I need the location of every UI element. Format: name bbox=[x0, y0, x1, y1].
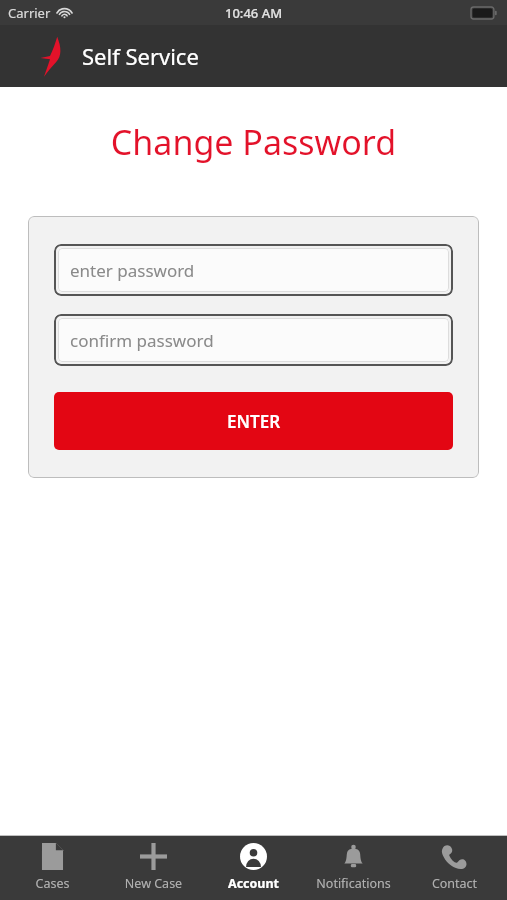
other: New Case bbox=[140, 843, 167, 870]
button[interactable]: enter password bbox=[58, 248, 449, 292]
other: Cases bbox=[39, 843, 66, 870]
button[interactable]: Notifications bbox=[306, 836, 401, 900]
staticText: 10:46 AM bbox=[225, 4, 283, 22]
staticText: Self Service bbox=[82, 41, 199, 71]
button[interactable]: confirm password bbox=[58, 318, 449, 362]
button[interactable]: New Case bbox=[106, 836, 201, 900]
other: Contact bbox=[441, 843, 468, 870]
button[interactable]: Account bbox=[206, 836, 301, 900]
staticText: Carrier bbox=[8, 4, 51, 22]
staticText: Account bbox=[206, 875, 301, 892]
button[interactable]: ENTER bbox=[54, 392, 453, 450]
staticText: New Case bbox=[106, 875, 201, 892]
staticText: Notifications bbox=[306, 875, 401, 892]
staticText: ENTER bbox=[227, 410, 281, 433]
button[interactable]: Contact bbox=[407, 836, 502, 900]
other: Account bbox=[240, 843, 267, 870]
staticText: confirm password bbox=[70, 329, 214, 352]
other: Notifications bbox=[340, 843, 367, 870]
staticText: Change Password bbox=[0, 119, 507, 165]
staticText: Contact bbox=[407, 875, 502, 892]
button[interactable]: Cases bbox=[5, 836, 100, 900]
staticText: enter password bbox=[70, 259, 195, 282]
staticText: Cases bbox=[5, 875, 100, 892]
